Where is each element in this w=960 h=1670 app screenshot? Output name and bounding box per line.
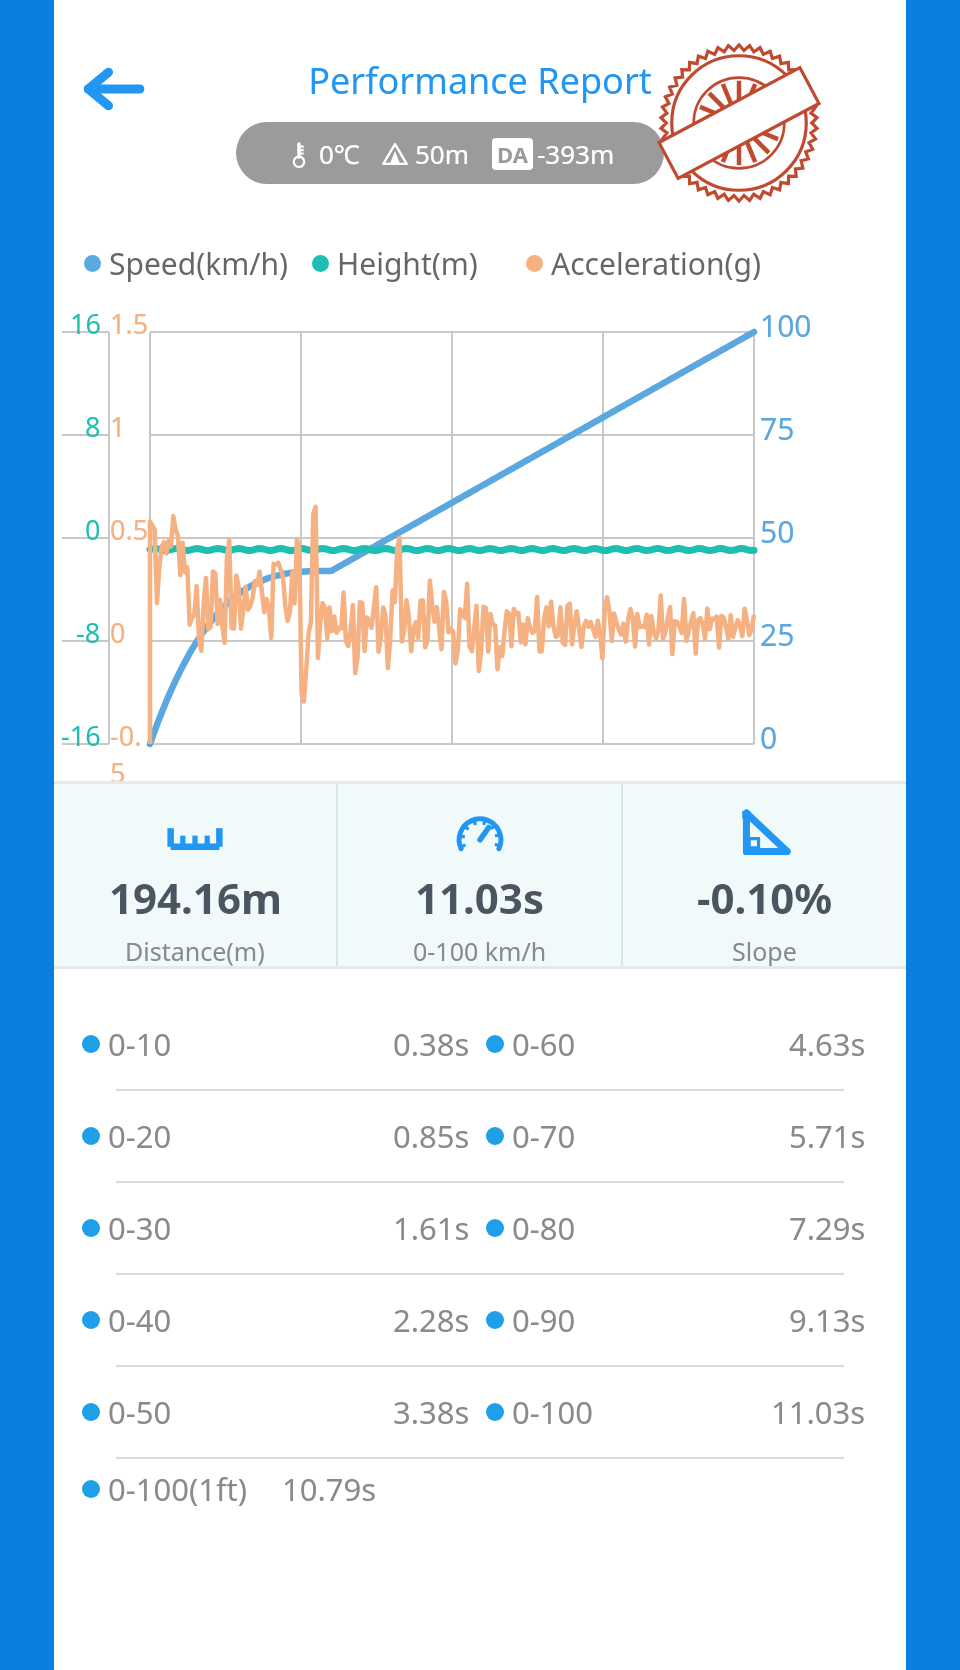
staticText: 0-50 xyxy=(108,1391,172,1433)
staticText: 50 xyxy=(760,511,795,552)
staticText: 0.38s xyxy=(393,1023,470,1065)
staticText: 0-70 xyxy=(512,1115,576,1157)
button[interactable]: 0-50 xyxy=(54,1367,906,1457)
staticText: 0-60 xyxy=(512,1023,576,1065)
staticText: Acceleration(g) xyxy=(551,243,761,284)
staticText: 2.28s xyxy=(393,1299,470,1341)
staticText: -0.10% xyxy=(697,869,833,926)
staticText: 0-40 xyxy=(108,1299,172,1341)
button[interactable]: 0-20 xyxy=(54,1091,906,1181)
staticText: 0.5 xyxy=(110,511,149,548)
staticText: 1.5 xyxy=(110,305,149,342)
staticText: 0 xyxy=(85,511,101,548)
staticText: 0℃ xyxy=(319,136,360,171)
staticText: 194.16m xyxy=(109,869,282,926)
staticText: 25 xyxy=(760,614,795,655)
staticText: 0-100 km/h xyxy=(413,934,547,968)
staticText: 0-100 xyxy=(512,1391,593,1433)
staticText: 7.29s xyxy=(789,1207,866,1249)
staticText: 11.03s xyxy=(771,1391,866,1433)
staticText: 8 xyxy=(85,408,101,445)
staticText: 0 xyxy=(110,614,126,651)
button[interactable]: Acceleration(g) xyxy=(526,243,761,284)
button[interactable]: Back xyxy=(72,48,154,130)
staticText: 0-100(1ft) xyxy=(108,1468,248,1510)
staticText: 1 xyxy=(110,408,126,445)
staticText: 0 xyxy=(760,717,778,758)
button[interactable]: Height(m) xyxy=(312,243,478,284)
staticText: 11.03s xyxy=(415,869,544,926)
staticText: 16 xyxy=(70,305,101,342)
staticText: 0-20 xyxy=(108,1115,172,1157)
staticText: Distance(m) xyxy=(125,934,265,968)
staticText: 50m xyxy=(415,136,470,171)
button[interactable]: -0.10% xyxy=(623,781,906,969)
staticText: 9.13s xyxy=(789,1299,866,1341)
staticText: 1.61s xyxy=(393,1207,470,1249)
staticText: 0-90 xyxy=(512,1299,576,1341)
button[interactable]: 0℃ xyxy=(236,122,664,184)
staticText: 0.85s xyxy=(393,1115,470,1157)
staticText: Height(m) xyxy=(337,243,478,284)
button[interactable]: 0-10 xyxy=(54,999,906,1089)
button[interactable]: 194.16m xyxy=(54,781,336,969)
button[interactable]: 11.03s xyxy=(338,781,621,969)
button[interactable]: 0-100(1ft) xyxy=(54,1459,906,1519)
staticText: 10.79s xyxy=(282,1468,377,1510)
staticText: 75 xyxy=(760,408,795,449)
staticText: 100 xyxy=(760,305,812,346)
staticText: 0-30 xyxy=(108,1207,172,1249)
staticText: 5.71s xyxy=(789,1115,866,1157)
button[interactable]: 0-30 xyxy=(54,1183,906,1273)
staticText: 4.63s xyxy=(789,1023,866,1065)
staticText: Slope xyxy=(732,934,797,968)
staticText: 0-10 xyxy=(108,1023,172,1065)
staticText: -393m xyxy=(537,136,615,171)
staticText: Speed(km/h) xyxy=(109,243,288,284)
staticText: -8 xyxy=(76,614,101,651)
staticText: -0.5 xyxy=(110,717,150,791)
staticText: 0-80 xyxy=(512,1207,576,1249)
staticText: DA xyxy=(497,139,528,169)
button[interactable]: Speed(km/h) xyxy=(84,243,288,284)
button[interactable]: 0-40 xyxy=(54,1275,906,1365)
staticText: 3.38s xyxy=(393,1391,470,1433)
staticText: -16 xyxy=(61,717,101,754)
staticText: Performance Report xyxy=(54,56,906,105)
